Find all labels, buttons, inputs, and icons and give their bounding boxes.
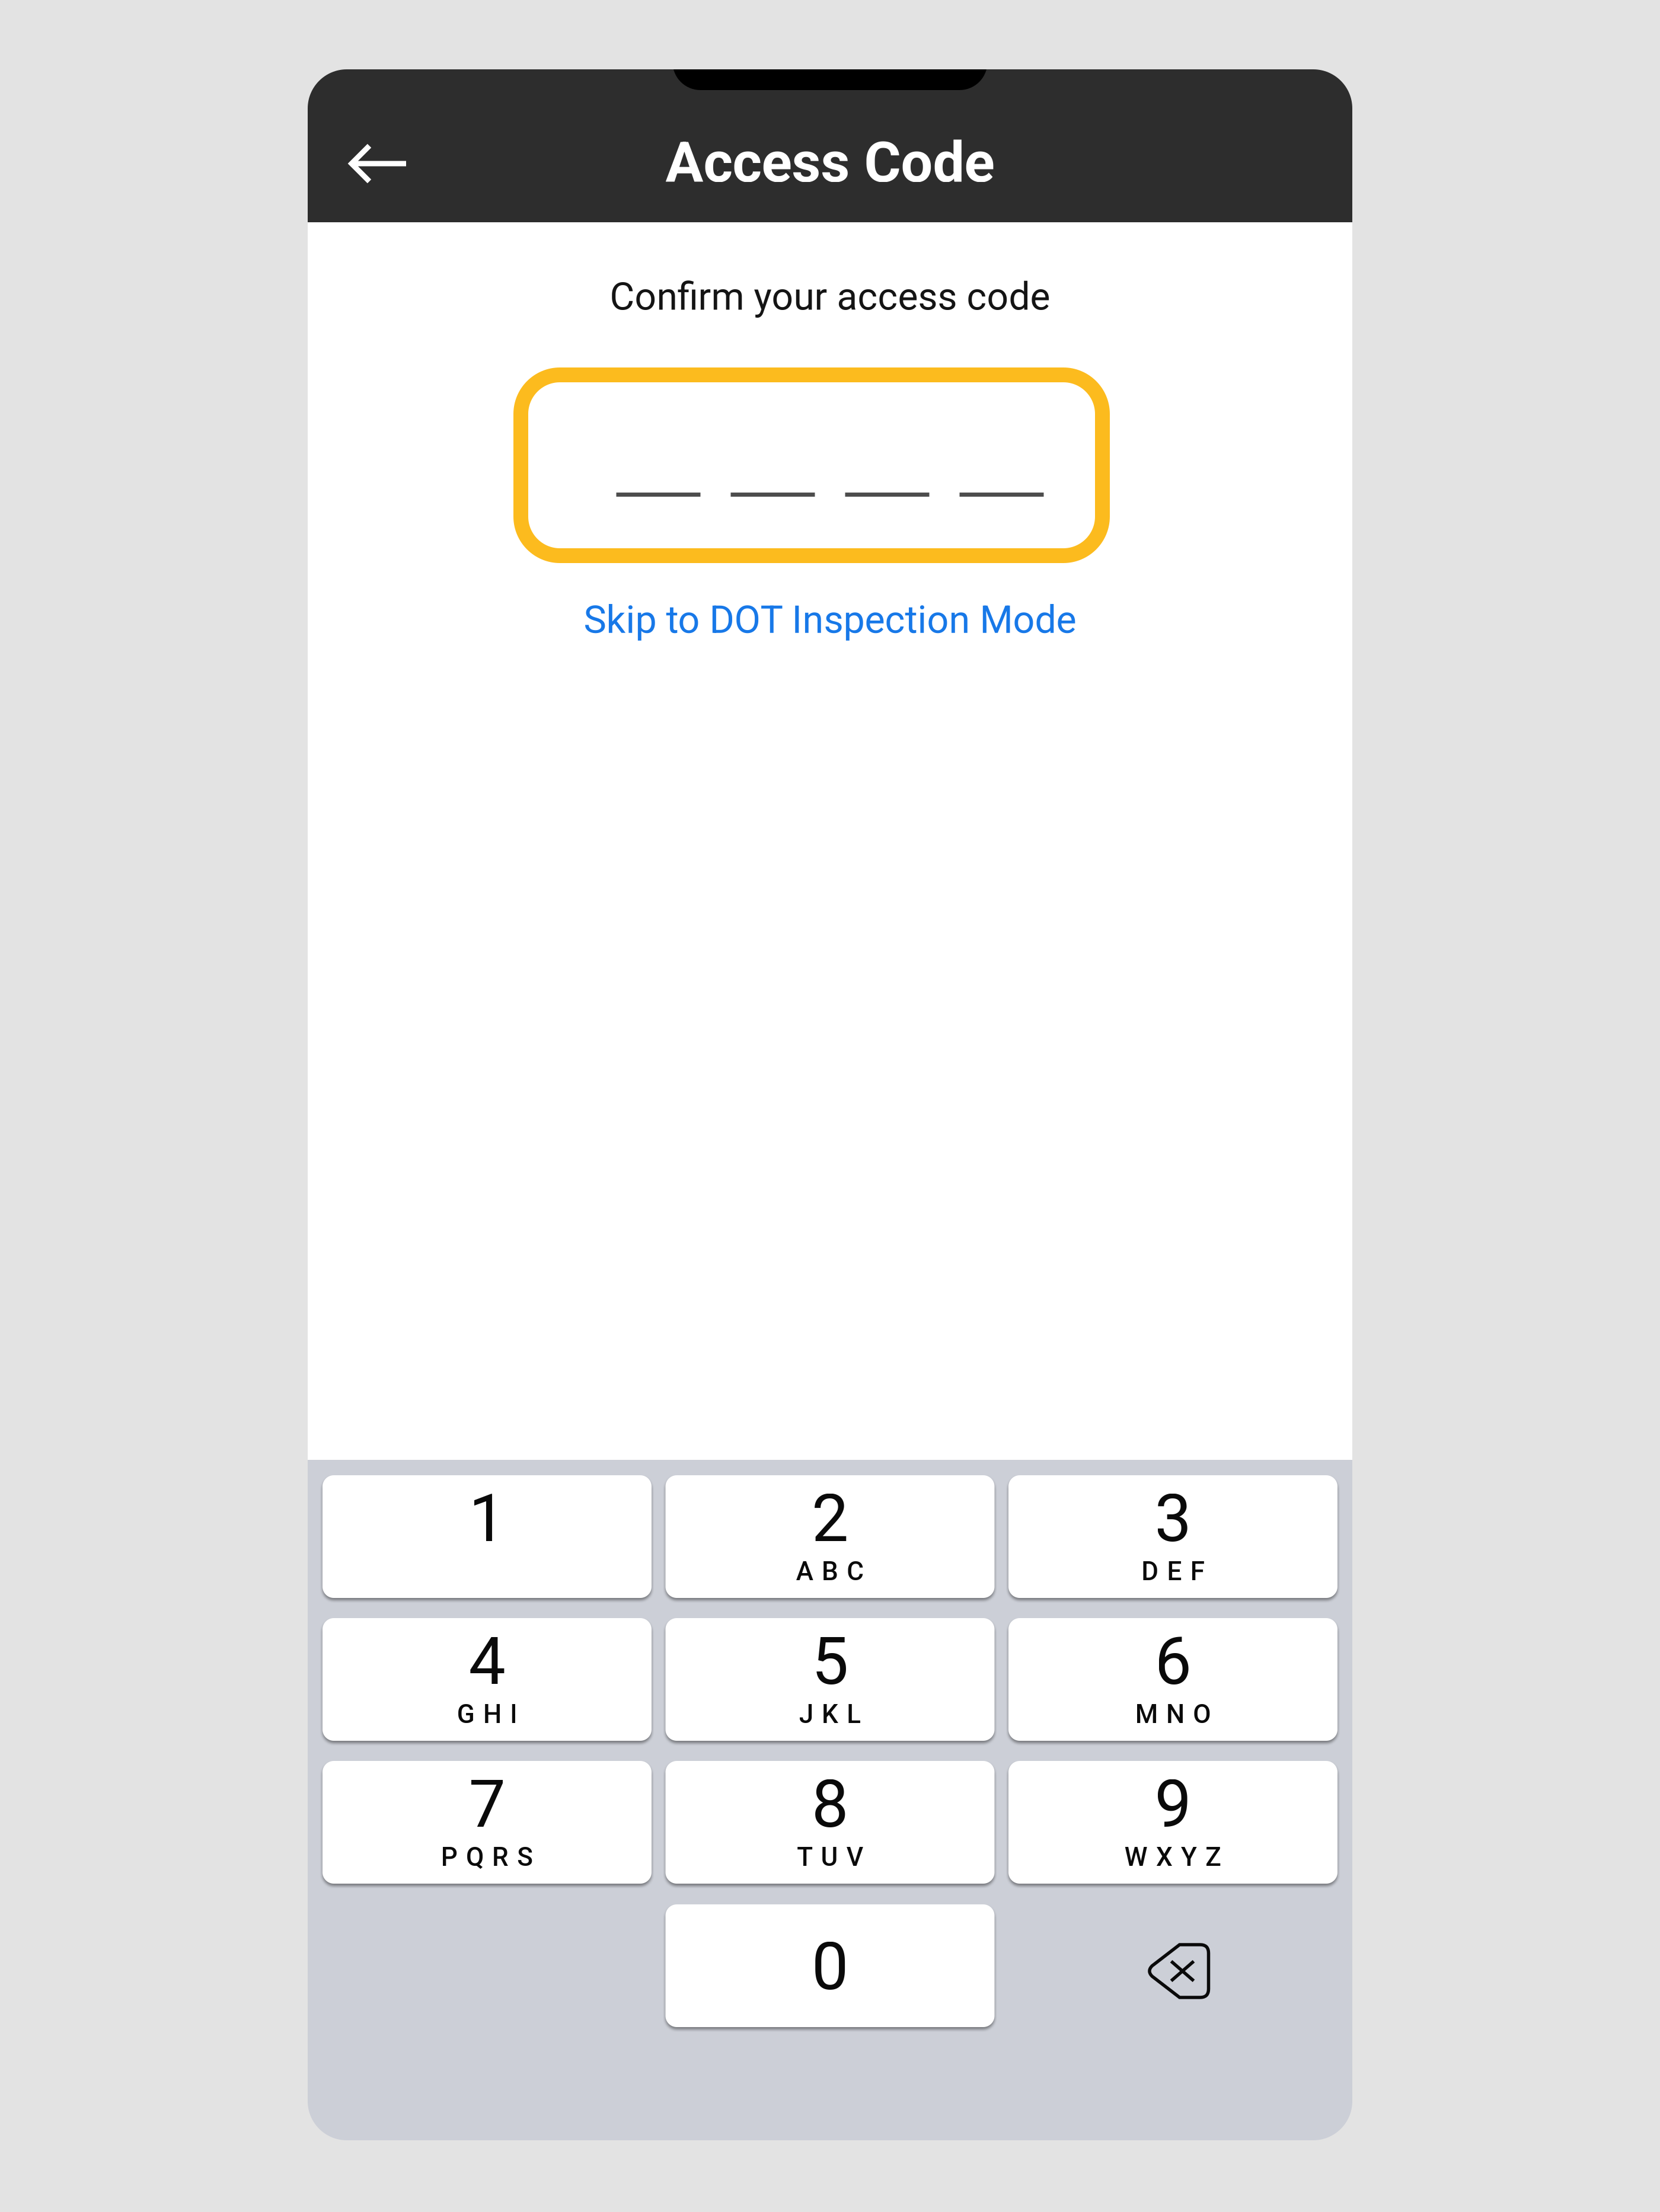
button[interactable]: 9 (1008, 1761, 1337, 1884)
button[interactable]: 1 (323, 1475, 652, 1598)
staticText: Skip to DOT Inspection Mode (584, 597, 1076, 642)
button[interactable]: 6 (1008, 1618, 1337, 1741)
staticText: P Q R S (441, 1842, 533, 1872)
staticText: D E F (1141, 1556, 1205, 1587)
button[interactable]: 8 (665, 1761, 995, 1884)
staticText: 4 (469, 1623, 505, 1700)
button[interactable]: 5 (665, 1618, 995, 1741)
staticText: 6 (1155, 1623, 1191, 1700)
button[interactable]: 4 (323, 1618, 652, 1741)
button[interactable]: 3 (1008, 1475, 1337, 1598)
staticText: 5 (812, 1623, 848, 1700)
staticText: 7 (469, 1766, 505, 1843)
staticText: 9 (1155, 1766, 1191, 1843)
staticText: M N O (1135, 1699, 1211, 1729)
staticText: Confirm your access code (610, 274, 1050, 319)
button[interactable]: Delete (1008, 1904, 1337, 2027)
staticText: A B C (796, 1556, 864, 1587)
staticText: J K L (799, 1699, 861, 1729)
staticText: G H I (457, 1699, 517, 1729)
staticText: W X Y Z (1124, 1842, 1221, 1872)
button[interactable]: Back (330, 69, 427, 222)
staticText: 1 (469, 1480, 505, 1557)
staticText: Access Code (665, 129, 995, 195)
button[interactable]: 2 (665, 1475, 995, 1598)
staticText: 2 (812, 1480, 848, 1557)
staticText: 8 (812, 1766, 848, 1843)
staticText: 3 (1155, 1480, 1191, 1557)
staticText: T U V (797, 1842, 863, 1872)
staticText: 0 (812, 1928, 848, 2005)
button[interactable]: 0 (665, 1904, 995, 2027)
button[interactable]: 7 (323, 1761, 652, 1884)
button[interactable]: Skip to DOT Inspection Mode (569, 589, 1091, 651)
